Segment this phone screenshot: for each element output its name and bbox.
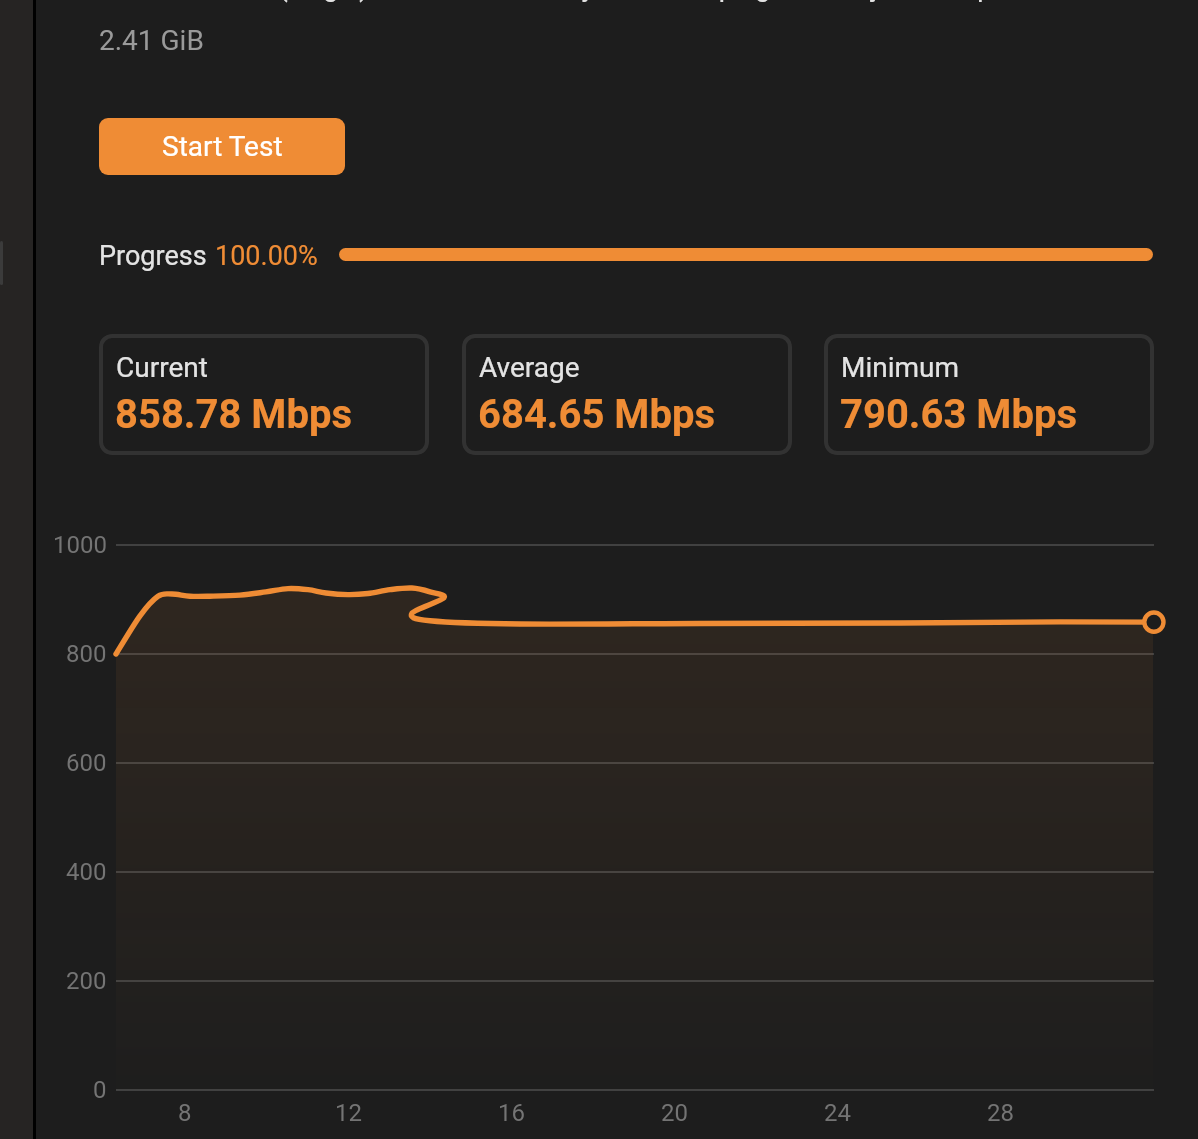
staticText: 20 — [661, 1099, 688, 1127]
staticText: 600 — [66, 749, 107, 777]
button[interactable]: Minimum — [824, 334, 1154, 455]
staticText: Start Test — [162, 130, 283, 163]
staticText: 8 — [178, 1099, 192, 1127]
staticText: 400 — [66, 858, 107, 886]
staticText: 28 — [987, 1099, 1014, 1127]
staticText: 800 — [66, 640, 107, 668]
staticText: 684.65 Mbps — [478, 391, 716, 438]
staticText: 24 — [824, 1099, 851, 1127]
staticText: 858.78 Mbps — [115, 391, 353, 438]
staticText: Average — [479, 351, 580, 384]
staticText: 790.63 Mbps — [840, 391, 1078, 438]
staticText: Progress — [99, 240, 214, 272]
staticText: Download test (single) to Berlin, German… — [99, 0, 1115, 3]
button[interactable]: Average — [462, 334, 792, 455]
staticText: 100.00% — [215, 240, 318, 272]
staticText: 16 — [498, 1099, 525, 1127]
staticText: 200 — [66, 967, 107, 995]
staticText: 2.41 GiB — [99, 24, 204, 57]
staticText: 12 — [335, 1099, 362, 1127]
staticText: Minimum — [841, 351, 960, 384]
staticText: 1000 — [53, 531, 107, 559]
other: Progress 100 percent — [339, 248, 1153, 261]
button[interactable]: Start Test — [99, 118, 345, 175]
staticText: Current — [116, 351, 208, 384]
button[interactable]: Current — [99, 334, 429, 455]
staticText: 0 — [93, 1076, 107, 1104]
